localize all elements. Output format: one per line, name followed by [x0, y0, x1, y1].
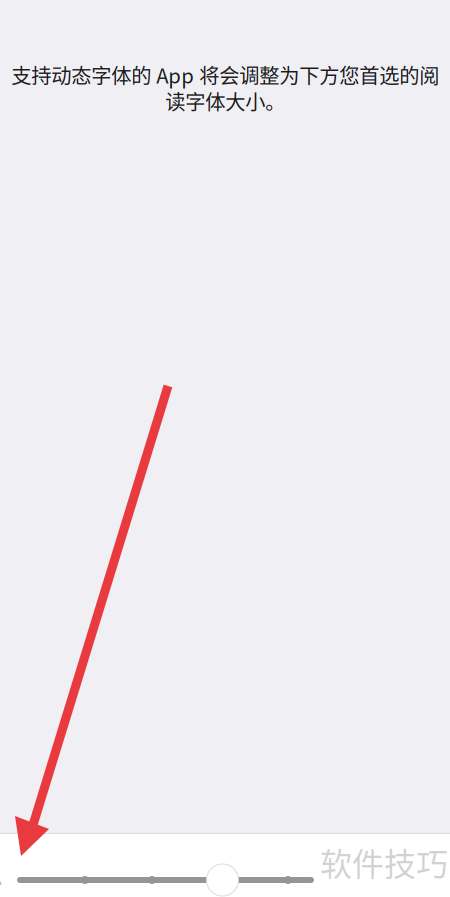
staticText: 支持动态字体的 App 将会调整为下方您首选的阅读字体大小。 — [11, 60, 439, 116]
button[interactable]: Text size slider — [0, 833, 450, 897]
staticText: 软件技巧 — [320, 839, 448, 885]
